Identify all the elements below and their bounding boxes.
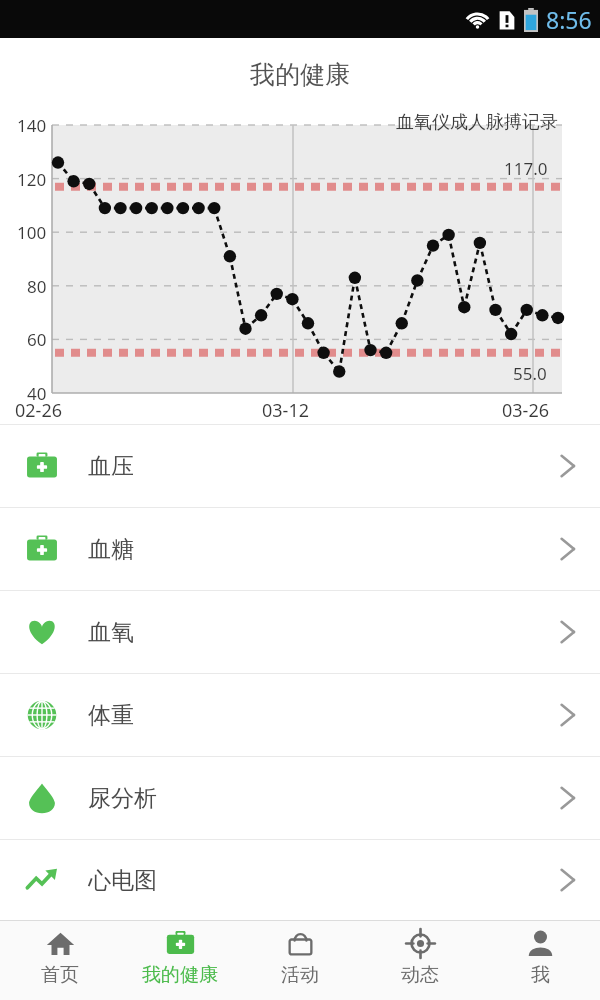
button[interactable]: 血糖 <box>0 508 600 590</box>
staticText: 心电图 <box>88 866 157 895</box>
staticText: 血糖 <box>88 535 134 564</box>
staticText: 首页 <box>41 963 79 987</box>
staticText: 02-26 <box>15 398 62 423</box>
staticText: 55.0 <box>513 362 547 385</box>
button[interactable]: 我的健康 <box>120 921 240 1000</box>
staticText: 我 <box>531 963 550 987</box>
button[interactable]: 动态 <box>360 921 480 1000</box>
staticText: 117.0 <box>504 157 548 180</box>
button[interactable]: 首页 <box>0 921 120 1000</box>
button[interactable]: 活动 <box>240 921 360 1000</box>
staticText: 尿分析 <box>88 784 157 813</box>
staticText: 8:56 <box>546 4 592 35</box>
staticText: 血氧 <box>88 618 134 647</box>
staticText: 体重 <box>88 701 134 730</box>
staticText: 03-26 <box>502 398 549 423</box>
staticText: 血氧仪成人脉搏记录 <box>396 111 558 134</box>
staticText: 80 <box>27 275 47 298</box>
button[interactable]: 我 <box>480 921 600 1000</box>
staticText: 120 <box>17 168 47 191</box>
staticText: 40 <box>27 382 47 405</box>
staticText: 血压 <box>88 452 134 481</box>
button[interactable]: 体重 <box>0 674 600 756</box>
staticText: 我的健康 <box>250 59 350 90</box>
button[interactable]: 尿分析 <box>0 757 600 839</box>
staticText: 100 <box>17 221 47 244</box>
staticText: 140 <box>17 114 47 137</box>
staticText: 我的健康 <box>142 963 218 987</box>
button[interactable]: 心电图 <box>0 840 600 920</box>
button[interactable]: 血氧 <box>0 591 600 673</box>
staticText: 03-12 <box>262 398 309 423</box>
staticText: 活动 <box>281 963 319 987</box>
staticText: 动态 <box>401 963 439 987</box>
button[interactable]: 血压 <box>0 425 600 507</box>
staticText: 60 <box>27 328 47 351</box>
